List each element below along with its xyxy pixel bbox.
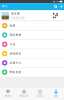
button[interactable]: 发现 — [32, 88, 48, 100]
staticText: 朋友圈 — [11, 12, 20, 15]
staticText: 我的相册 — [9, 33, 21, 37]
button[interactable]: 帮助反馈 — [0, 68, 64, 77]
staticText: 表情商店 — [9, 52, 21, 55]
staticText: 微信 — [5, 94, 11, 97]
staticText: 收藏 — [9, 24, 15, 27]
button[interactable]: 微信 — [0, 3, 8, 10]
staticText: 微信 — [2, 4, 8, 8]
button[interactable]: Search — [53, 3, 58, 10]
button[interactable]: 我 — [48, 88, 64, 100]
staticText: 我 — [54, 94, 57, 97]
button[interactable]: 朋友圈 — [0, 11, 64, 20]
staticText: 帮助反馈 — [9, 70, 21, 74]
button[interactable]: 表情商店 — [0, 49, 64, 58]
button[interactable]: 收藏 — [0, 21, 64, 30]
staticText: 卡包 — [9, 43, 15, 46]
button[interactable]: 微信 — [0, 88, 16, 100]
button[interactable]: 我的相册 — [0, 30, 64, 39]
button[interactable]: 卡包 — [0, 40, 64, 49]
staticText: 3条新消息 — [11, 16, 25, 19]
staticText: 发现 — [37, 94, 43, 97]
staticText: 通讯录 — [19, 94, 28, 97]
button[interactable]: 通讯录 — [16, 88, 32, 100]
button[interactable]: Add — [58, 3, 64, 10]
button[interactable]: 设置中心 — [0, 58, 64, 67]
staticText: 设置中心 — [9, 61, 21, 64]
